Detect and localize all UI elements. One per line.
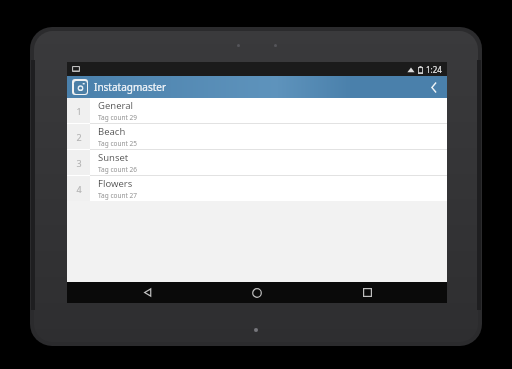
- staticText: General: [98, 99, 134, 112]
- button[interactable]: Back: [117, 282, 177, 303]
- staticText: 1:24: [426, 64, 442, 75]
- staticText: Tag count 29: [98, 113, 137, 122]
- staticText: Beach: [98, 125, 126, 138]
- button[interactable]: 2: [67, 124, 447, 149]
- staticText: Sunset: [98, 151, 129, 164]
- staticText: 4: [76, 183, 82, 195]
- button[interactable]: Recent apps: [337, 282, 397, 303]
- button[interactable]: 1: [67, 98, 447, 123]
- staticText: Instatagmaster: [94, 80, 167, 94]
- button[interactable]: 4: [67, 176, 447, 201]
- staticText: 1: [76, 105, 82, 117]
- button[interactable]: Home: [227, 282, 287, 303]
- staticText: 3: [76, 157, 82, 169]
- staticText: Flowers: [98, 177, 133, 190]
- staticText: 2: [76, 131, 82, 143]
- button[interactable]: 3: [67, 150, 447, 175]
- staticText: Tag count 27: [98, 191, 137, 200]
- button[interactable]: Back: [421, 76, 447, 98]
- staticText: Tag count 25: [98, 139, 137, 148]
- staticText: Tag count 26: [98, 165, 137, 174]
